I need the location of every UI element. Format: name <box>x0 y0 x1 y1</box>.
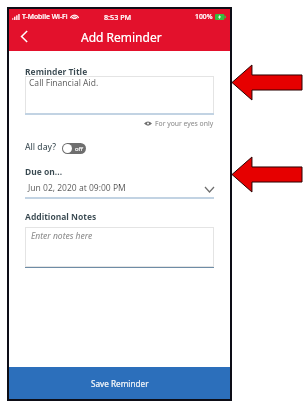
button[interactable]: Back <box>14 27 36 49</box>
staticText: off <box>75 145 83 153</box>
button[interactable]: Save Reminder <box>9 367 230 399</box>
staticText: Additional Notes <box>25 211 97 223</box>
staticText: Due on... <box>25 166 63 178</box>
staticText: All day? <box>25 141 56 153</box>
staticText: Add Reminder <box>81 29 162 45</box>
staticText: Call Financial Aid. <box>29 77 99 89</box>
button[interactable]: Enter notes here <box>25 227 214 267</box>
staticText: 8:53 PM <box>104 12 132 22</box>
staticText: Save Reminder <box>91 378 149 389</box>
staticText: Enter notes here <box>31 230 93 242</box>
staticText: Reminder Title <box>25 66 88 78</box>
staticText: 100% <box>195 12 213 21</box>
staticText: T-Mobile Wi-Fi <box>22 12 68 21</box>
button[interactable]: Call Financial Aid. <box>25 76 214 114</box>
button[interactable]: Jun 02, 2020 at 09:00 PM <box>25 182 214 194</box>
staticText: For your eyes only <box>155 119 214 128</box>
button[interactable]: All day? <box>25 141 86 153</box>
staticText: Jun 02, 2020 at 09:00 PM <box>28 182 126 194</box>
